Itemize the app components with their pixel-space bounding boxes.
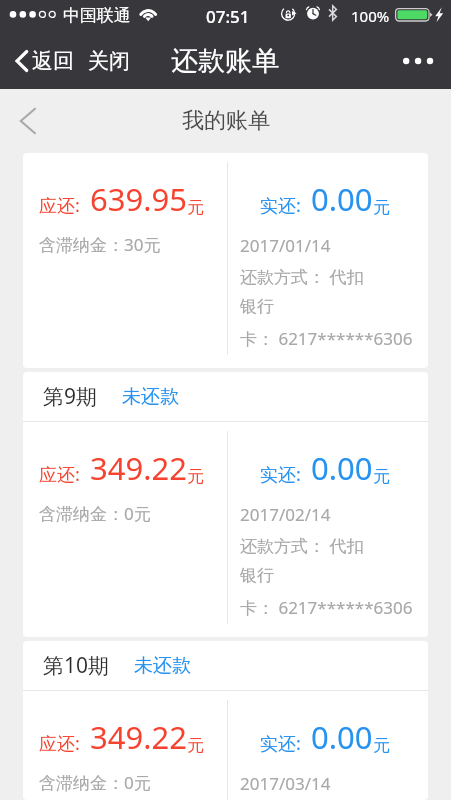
staticText: :	[75, 193, 90, 218]
staticText: 07:51	[206, 5, 250, 28]
staticText: :	[296, 462, 311, 487]
staticText: 639.95	[90, 178, 187, 220]
staticText: :	[75, 462, 90, 487]
staticText: 卡： 6217******6306	[240, 596, 413, 619]
button[interactable]: More options	[385, 45, 451, 77]
staticText: 0.00	[311, 178, 373, 220]
staticText: :	[296, 193, 311, 218]
staticText: 应还	[39, 464, 75, 487]
staticText: 元	[373, 735, 390, 756]
staticText: 还款方式： 代扣	[240, 265, 364, 288]
staticText: 含滞纳金：0元	[39, 502, 151, 525]
staticText: 未还款	[122, 385, 179, 409]
staticText: 元	[187, 735, 204, 756]
button[interactable]: 关闭	[82, 42, 136, 80]
staticText: 2017/02/14	[240, 503, 331, 526]
button[interactable]: 应还	[23, 153, 428, 368]
staticText: 元	[373, 466, 390, 487]
staticText: 实还	[260, 733, 296, 756]
staticText: 实还	[260, 195, 296, 218]
staticText: 卡： 6217******6306	[240, 327, 413, 350]
button[interactable]: 第10期	[23, 641, 428, 800]
staticText: 实还	[260, 464, 296, 487]
staticText: 0.00	[311, 447, 373, 489]
staticText: 含滞纳金：30元	[39, 233, 161, 256]
staticText: :	[75, 731, 90, 756]
staticText: 还款方式： 代扣	[240, 534, 364, 557]
staticText: 元	[373, 197, 390, 218]
staticText: 第10期	[43, 651, 110, 680]
staticText: 349.22	[90, 447, 187, 489]
staticText: 中国联通	[63, 5, 131, 26]
button[interactable]: 返回	[0, 42, 78, 80]
staticText: 2017/03/14	[240, 772, 331, 795]
staticText: 元	[187, 197, 204, 218]
staticText: 返回	[32, 48, 74, 74]
staticText: 应还	[39, 195, 75, 218]
staticText: 349.22	[90, 716, 187, 758]
staticText: 2017/01/14	[240, 234, 331, 257]
staticText: 银行	[240, 565, 274, 586]
button[interactable]: 第9期	[23, 372, 428, 637]
staticText: 元	[187, 466, 204, 487]
staticText: :	[296, 731, 311, 756]
staticText: 我的账单	[182, 107, 270, 135]
staticText: 含滞纳金：0元	[39, 771, 151, 794]
staticText: 0.00	[311, 716, 373, 758]
staticText: 未还款	[134, 654, 191, 678]
staticText: 银行	[240, 296, 274, 317]
staticText: 第9期	[43, 382, 98, 411]
staticText: 100%	[351, 6, 390, 26]
staticText: 还款账单	[171, 44, 279, 78]
button[interactable]: Back	[0, 99, 50, 143]
staticText: 关闭	[88, 48, 130, 74]
staticText: 应还	[39, 733, 75, 756]
